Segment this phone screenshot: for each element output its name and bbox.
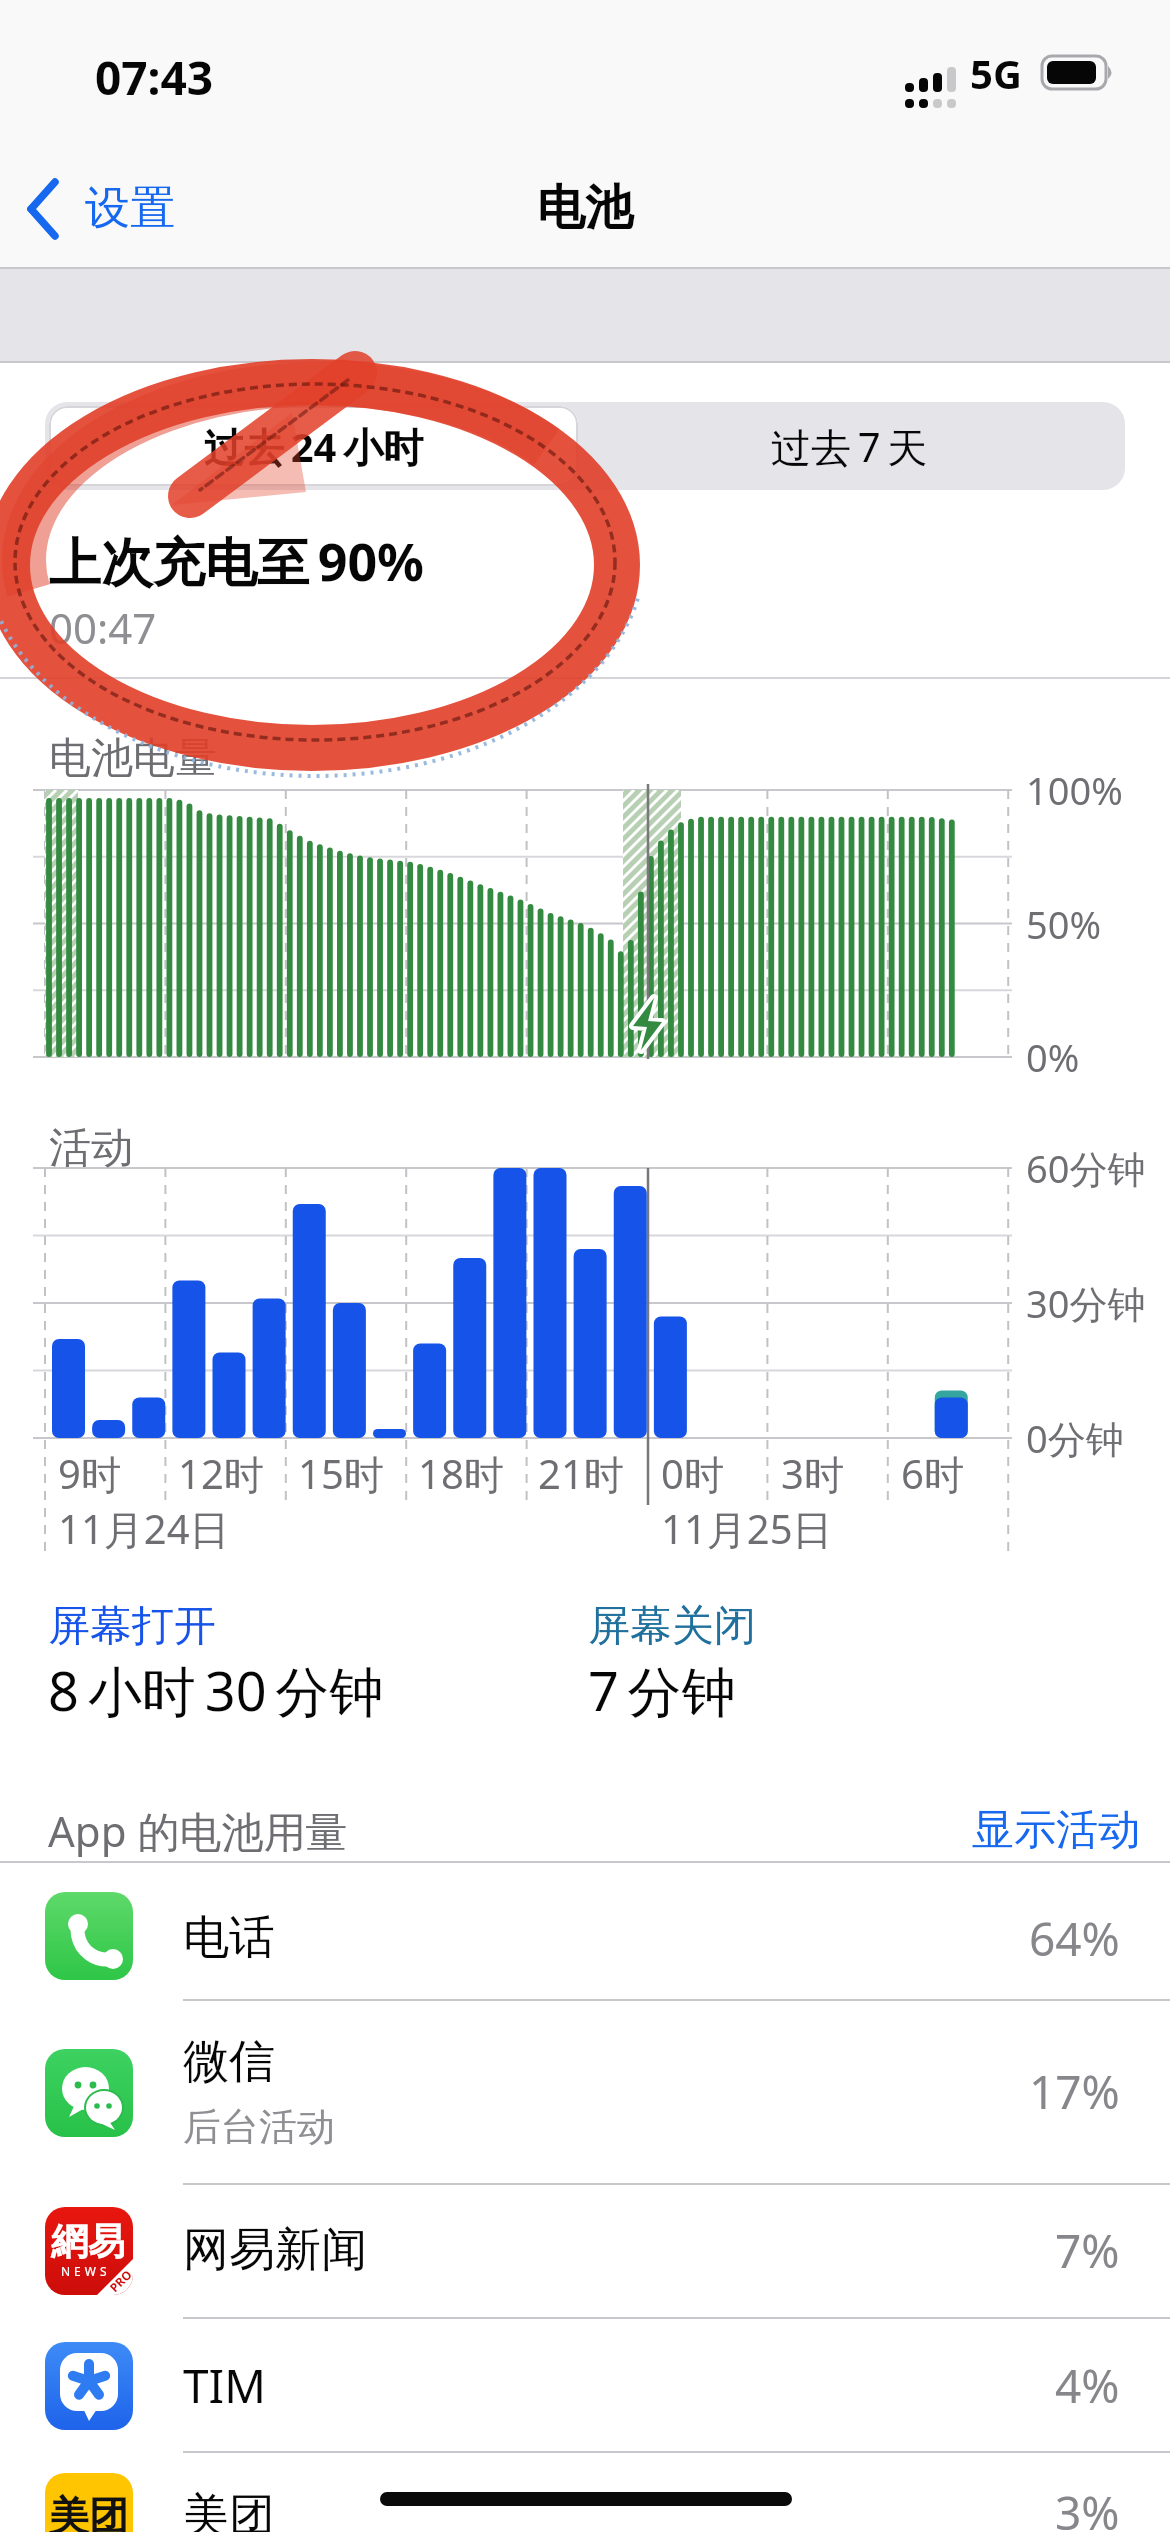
button[interactable]: 设置 [20,172,200,244]
staticText: 美团 [49,2491,129,2532]
staticText: 4% [1055,2354,1120,2417]
staticText: 7 分钟 [588,1653,736,1727]
staticText: 网易新闻 [183,2221,367,2279]
staticText: 07:43 [95,46,214,109]
staticText: 50% [1026,898,1102,950]
staticText: 網易 [51,2218,125,2265]
staticText: 上次充电至 90% [49,525,425,596]
staticText: 电池 [537,178,633,238]
staticText: 21时 [538,1446,624,1501]
button[interactable]: 显示活动 [940,1800,1140,1860]
staticText: 过去 24 小时 [204,419,424,474]
button[interactable] [0,2185,1170,2318]
button[interactable] [0,2319,1170,2452]
staticText: 7% [1055,2219,1120,2282]
staticText: 15时 [298,1446,384,1501]
staticText: 显示活动 [972,1804,1140,1857]
staticText: 设置 [85,180,175,237]
staticText: 00:47 [49,599,157,656]
button[interactable] [0,1872,1170,2000]
staticText: 17% [1029,2060,1120,2123]
staticText: 屏幕关闭 [588,1600,756,1653]
staticText: 12时 [178,1446,264,1501]
staticText: 9时 [58,1446,121,1501]
staticText: 60分钟 [1026,1142,1146,1194]
button[interactable] [0,2453,1170,2532]
button[interactable]: 过去 24 小时 [49,406,578,486]
staticText: 屏幕打开 [48,1600,216,1653]
staticText: NEWS [61,2263,111,2279]
staticText: 过去 7 天 [771,419,928,474]
staticText: 0分钟 [1026,1412,1124,1464]
button[interactable] [0,2001,1170,2184]
staticText: 美团 [183,2487,275,2532]
staticText: 18时 [418,1446,504,1501]
staticText: 11月24日 [58,1501,230,1556]
staticText: PRO [106,2266,135,2295]
staticText: TIM [183,2354,266,2417]
staticText: 活动 [49,1122,133,1175]
staticText: 0% [1026,1031,1080,1083]
staticText: 5G [970,46,1022,100]
staticText: 8 小时 30 分钟 [48,1653,384,1727]
staticText: 100% [1026,764,1123,816]
staticText: 电池电量 [49,732,217,785]
staticText: 11月25日 [661,1501,833,1556]
staticText: 0时 [661,1446,724,1501]
staticText: 后台活动 [183,2103,335,2151]
staticText: 微信 [183,2033,275,2091]
staticText: 电话 [183,1909,275,1967]
staticText: 3% [1055,2481,1120,2532]
staticText: App 的电池用量 [48,1802,348,1859]
staticText: 6时 [901,1446,964,1501]
staticText: 30分钟 [1026,1277,1146,1329]
staticText: 64% [1029,1907,1120,1970]
button[interactable]: 过去 7 天 [578,406,1121,486]
staticText: 3时 [781,1446,844,1501]
